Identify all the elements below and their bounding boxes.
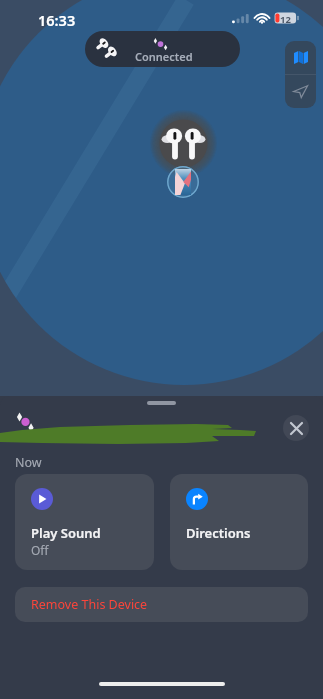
button[interactable]: Locate me (285, 75, 316, 108)
button[interactable]: Remove This Device (15, 587, 308, 622)
staticText: Now (15, 454, 42, 471)
staticText: Directions (186, 524, 251, 542)
button[interactable]: Close (283, 415, 309, 441)
staticText: 12 (280, 13, 291, 26)
staticText: Connected (135, 49, 193, 64)
button[interactable]: AirPods Connected (85, 31, 240, 67)
staticText: 16:33 (38, 10, 76, 30)
staticText: Play Sound (31, 524, 101, 542)
staticText: Off (31, 542, 49, 558)
button[interactable]: Directions (170, 474, 308, 570)
button[interactable]: Map type (285, 41, 316, 74)
button[interactable]: AirPods location (151, 111, 216, 176)
button[interactable]: Play Sound (15, 474, 154, 570)
staticText: Remove This Device (31, 596, 148, 613)
button[interactable]: Owner (167, 166, 199, 198)
